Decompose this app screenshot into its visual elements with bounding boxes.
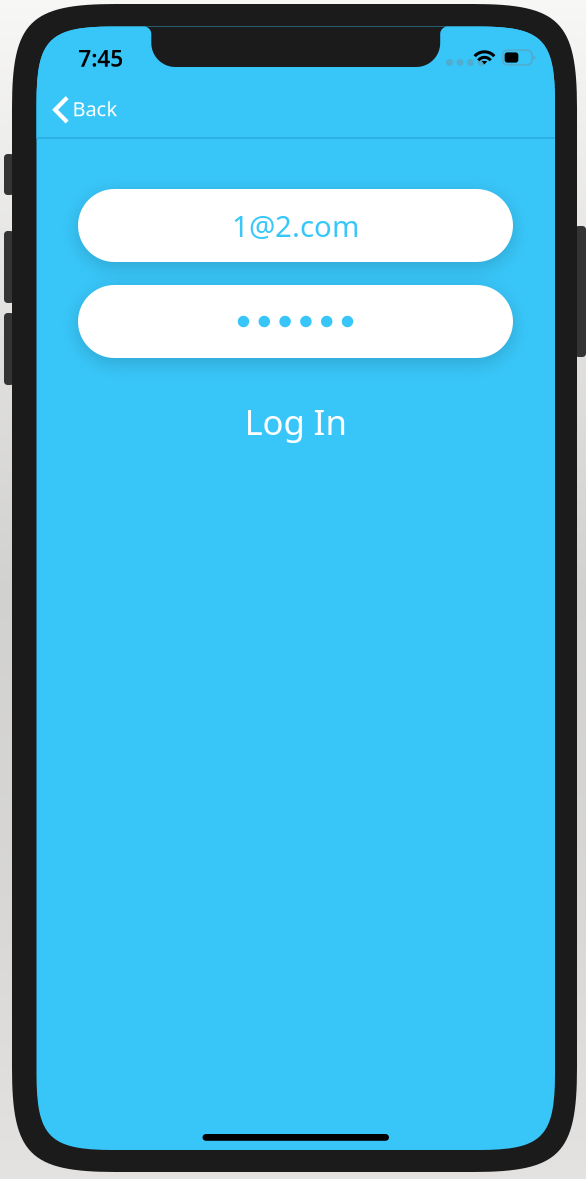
staticText: Back <box>72 95 117 122</box>
button[interactable]: Back <box>36 88 146 138</box>
staticText: 1@2.com <box>232 206 359 245</box>
staticText: Log In <box>244 398 346 444</box>
staticText: 7:45 <box>78 43 123 73</box>
button[interactable]: Log In <box>78 397 513 445</box>
